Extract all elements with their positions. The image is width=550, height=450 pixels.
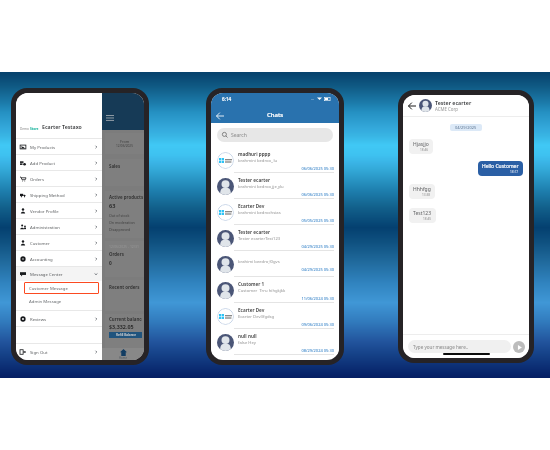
staticText: Customer Trru hihgkjkk [238,288,286,294]
button[interactable]: Sign Out [16,344,102,360]
button[interactable]: Add Product [16,155,102,171]
staticText: Refill Balance [116,333,136,337]
staticText: $3,332.05 [109,323,134,330]
staticText: Search [231,132,247,139]
staticText: Sign Out [30,349,94,355]
button[interactable]: Send [513,341,525,353]
button[interactable]: Shipping Method [16,187,102,203]
button[interactable]: Test123 [409,208,436,223]
button[interactable]: Reviews [16,311,102,327]
staticText: 05/05/2025 05:30 [238,218,334,223]
staticText: My Products [30,144,94,150]
staticText: Ecarter Dev [238,307,265,313]
button[interactable]: Customer 1 [211,277,339,303]
staticText: Ecarter Testaxo [42,123,82,130]
staticText: Test123 [413,210,432,217]
staticText: Demo [20,127,30,131]
staticText: 12/06/2025 - 12/31 [109,244,139,249]
staticText: brahmini bedrochsias [238,210,281,216]
button[interactable]: Hjasjjo [409,139,433,154]
staticText: 06/06/2025 05:30 [238,192,334,197]
button[interactable]: null null [211,329,339,355]
staticText: Tester ecarterTest123 [238,236,281,242]
staticText: Message Center [30,271,94,277]
staticText: Tester ecarter [238,177,271,183]
button[interactable]: Customer Message [24,282,99,294]
button[interactable]: Home [119,349,127,360]
staticText: Active products [109,194,144,200]
button[interactable]: My Products [16,139,102,155]
button[interactable]: Message Center [16,267,102,281]
staticText: false Hey [238,340,256,346]
button[interactable]: Refill Balance [109,332,142,338]
staticText: 13:38 [422,193,431,197]
staticText: ... [311,96,315,101]
staticText: Hjasjjo [413,141,429,148]
staticText: Administration [30,224,94,230]
staticText: On moderation [109,220,135,225]
staticText: madhuri pppp [238,151,271,157]
button[interactable]: Hello Customer [478,161,523,176]
staticText: Tester ecarter [238,229,271,235]
staticText: Tester ecarter [435,99,472,106]
staticText: 63 [109,202,116,210]
button[interactable]: Orders [16,171,102,187]
button[interactable]: Ecarter Dev [211,303,339,329]
staticText: Hhhfgg [413,186,431,193]
staticText: Customer [30,240,94,246]
staticText: Customer 1 [238,281,265,287]
button[interactable]: Back [406,100,417,111]
staticText: Recent orders [109,284,140,290]
staticText: Add Product [30,160,94,166]
staticText: ACME Corp [435,106,459,112]
staticText: 11/06/2024 05:30 [238,296,334,301]
staticText: Sales [109,163,121,169]
staticText: Ecarter Dev [238,203,265,209]
staticText: 09/06/2024 05:30 [238,322,334,327]
staticText: Disapproved [109,227,131,232]
button[interactable]: Customer [16,235,102,251]
staticText: Type your message here.. [413,344,469,350]
button[interactable]: Ecarter Dev [211,199,339,225]
button[interactable]: Search [217,128,333,142]
staticText: Store [30,127,39,131]
staticText: Out of stock [109,213,130,218]
staticText: 6:14 [222,96,232,102]
staticText: Customer Message [29,285,68,291]
staticText: brahmini bedroo,jje,ylu [238,184,284,190]
staticText: brahmini bedroo,,lu [238,158,278,164]
staticText: 08/29/2024 05:30 [238,348,334,353]
button[interactable]: Vendor Profile [16,203,102,219]
staticText: Shipping Method [30,192,94,198]
button[interactable]: Back [213,109,226,122]
button[interactable]: Admin Message [16,296,102,310]
staticText: brahimi beedro;l0gvs [238,259,280,265]
staticText: Home [119,356,127,360]
staticText: 18:17 [510,170,519,174]
staticText: 06/06/2025 05:30 [238,166,334,171]
staticText: 04/29/2025 05:30 [238,244,334,249]
staticText: Orders [109,251,124,257]
staticText: 18:46 [420,148,429,152]
button[interactable]: brahimi beedro;l0gvs [211,251,339,277]
button[interactable]: Accounting [16,251,102,267]
staticText: Accounting [30,256,94,262]
staticText: 18:45 [423,217,432,221]
button[interactable]: Administration [16,219,102,235]
staticText: Ecarter Dev3fgdsg [238,314,275,320]
button[interactable]: Hhhfgg [409,184,435,199]
staticText: Reviews [30,316,94,322]
staticText: Admin Message [29,298,62,304]
staticText: 12/06/2025 [116,144,133,148]
staticText: Current balance [109,316,142,322]
staticText: null null [238,333,257,339]
staticText: Chats [267,111,284,119]
button[interactable]: madhuri pppp [211,147,339,173]
button[interactable]: Type your message here.. [408,340,511,353]
button[interactable]: Tester ecarter [211,173,339,199]
staticText: Vendor Profile [30,208,94,214]
staticText: 04/29/2025 [455,125,477,130]
button[interactable]: Tester ecarter [211,225,339,251]
staticText: Orders [30,176,94,182]
staticText: 0 [109,260,112,267]
